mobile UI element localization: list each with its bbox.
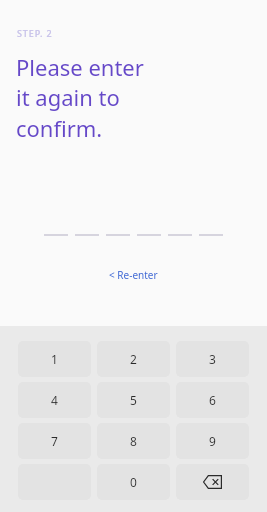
staticText: < Re-enter — [109, 268, 158, 282]
staticText: STEP. 2 — [17, 27, 53, 39]
staticText: 3 — [209, 351, 216, 367]
staticText: 9 — [209, 433, 216, 449]
staticText: 1 — [51, 351, 58, 367]
button[interactable]: 9 — [176, 423, 249, 459]
button[interactable]: Backspace — [176, 464, 249, 500]
staticText: Please enter it again to confirm. — [16, 52, 144, 144]
button[interactable]: 2 — [97, 341, 170, 377]
button[interactable]: 3 — [176, 341, 249, 377]
staticText: 5 — [130, 392, 137, 408]
staticText: 0 — [130, 474, 137, 490]
staticText: 2 — [130, 351, 137, 367]
staticText: 7 — [51, 433, 58, 449]
button[interactable]: 0 — [97, 464, 170, 500]
button[interactable]: < Re-enter — [101, 264, 166, 286]
staticText: 8 — [130, 433, 137, 449]
button[interactable]: 7 — [18, 423, 91, 459]
button[interactable]: 6 — [176, 382, 249, 418]
button[interactable]: 1 — [18, 341, 91, 377]
button[interactable]: 5 — [97, 382, 170, 418]
staticText: 4 — [51, 392, 58, 408]
button[interactable]: 8 — [97, 423, 170, 459]
staticText: 6 — [209, 392, 216, 408]
button[interactable]: 4 — [18, 382, 91, 418]
